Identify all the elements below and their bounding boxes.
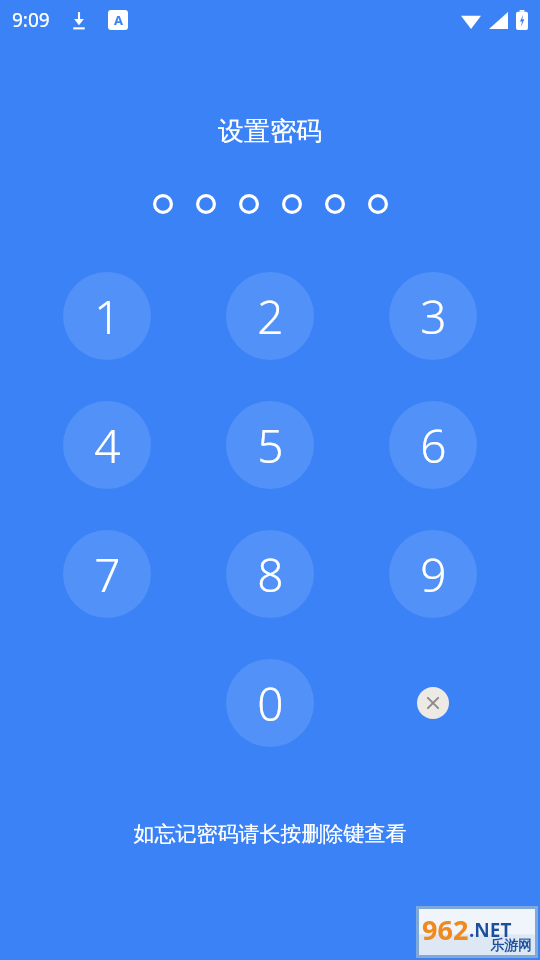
staticText: 设置密码 [0,115,540,148]
button[interactable]: 5 [226,401,314,489]
button[interactable]: 0 [226,659,314,747]
staticText: A [114,11,123,29]
button[interactable]: 6 [389,401,477,489]
button[interactable]: 1 [63,272,151,360]
button[interactable]: 3 [389,272,477,360]
staticText: 3 [420,285,447,348]
staticText: 乐游网 [490,937,532,955]
staticText: 0 [257,672,284,735]
button[interactable]: 如忘记密码请长按删除键查看 [0,821,540,847]
staticText: 962 [422,911,469,948]
staticText: 7 [94,543,121,606]
staticText: 9 [420,543,447,606]
staticText: 6 [420,414,447,477]
button[interactable]: Delete [389,659,477,747]
button[interactable]: 8 [226,530,314,618]
button[interactable]: 4 [63,401,151,489]
staticText: .NET [469,917,512,943]
staticText: 2 [257,285,284,348]
staticText: 9:09 [12,7,50,33]
staticText: 4 [94,414,121,477]
button[interactable]: 9 [389,530,477,618]
button[interactable]: 7 [63,530,151,618]
button[interactable]: 2 [226,272,314,360]
staticText: 1 [94,285,121,348]
staticText: 5 [257,414,284,477]
staticText: 8 [257,543,284,606]
